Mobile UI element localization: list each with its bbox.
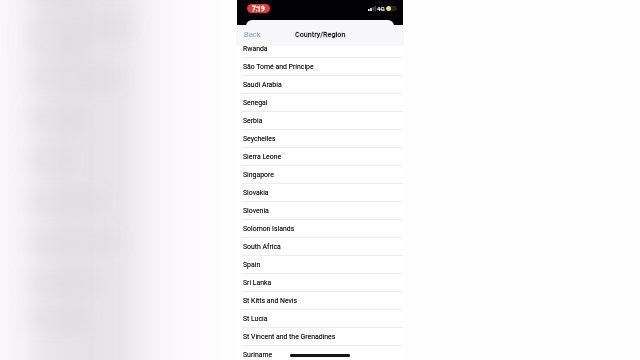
staticText: Rwanda xyxy=(243,45,268,53)
staticText: South Africa xyxy=(243,243,281,251)
staticText: Serbia xyxy=(24,149,72,169)
staticText: Solomon Islands xyxy=(243,225,295,233)
staticText: 7:19 xyxy=(252,5,265,13)
button[interactable]: Singapore xyxy=(236,166,404,184)
staticText: Back xyxy=(244,30,261,39)
staticText: Slovakia xyxy=(243,189,269,197)
button[interactable]: Seychelles xyxy=(236,130,404,148)
button[interactable]: Rwanda xyxy=(236,40,404,58)
staticText: Sierra Leone xyxy=(243,153,282,161)
button[interactable]: Slovenia xyxy=(236,202,404,220)
staticText: Seychelles xyxy=(243,135,276,143)
button[interactable]: Back xyxy=(240,26,265,43)
staticText: 4G xyxy=(377,5,385,12)
staticText: St Lucia xyxy=(243,315,268,323)
staticText: Senegal xyxy=(243,99,268,107)
button[interactable]: St Kitts and Nevis xyxy=(236,292,404,310)
staticText: Serbia xyxy=(243,117,263,125)
staticText: St Lucia xyxy=(243,315,268,323)
staticText: Slovakia xyxy=(24,308,88,328)
staticText: Serbia xyxy=(243,117,263,125)
button[interactable]: Sri Lanka xyxy=(236,274,404,292)
button[interactable]: São Tomé and Príncipe xyxy=(236,58,404,76)
staticText: Sri Lanka xyxy=(243,279,272,287)
staticText: Sierra Leone xyxy=(243,153,282,161)
staticText: Singapore xyxy=(243,171,274,179)
button[interactable]: Serbia xyxy=(236,112,404,130)
staticText: Senegal xyxy=(243,99,268,107)
staticText: São Tomé and Príncipe xyxy=(24,16,190,56)
button[interactable]: Solomon Islands xyxy=(236,220,404,238)
button[interactable]: Sierra Leone xyxy=(236,148,404,166)
staticText: St Vincent and the Grenadines xyxy=(243,333,336,341)
staticText: Seychelles xyxy=(24,190,105,210)
staticText: Slovenia xyxy=(243,207,269,215)
staticText: Slovenia xyxy=(243,207,269,215)
staticText: Saudi Arabia xyxy=(243,81,282,89)
staticText: St Vincent and the Grenadines xyxy=(243,333,336,341)
staticText: Rwanda xyxy=(24,0,85,5)
staticText: Spain xyxy=(243,261,261,269)
button[interactable]: Spain xyxy=(236,256,404,274)
staticText: South Africa xyxy=(243,243,281,251)
staticText: Singapore xyxy=(24,272,101,292)
button[interactable]: Slovakia xyxy=(236,184,404,202)
button[interactable]: South Africa xyxy=(236,238,404,256)
staticText: Saudi Arabia xyxy=(24,67,120,87)
staticText: São Tomé and Príncipe xyxy=(243,63,314,71)
staticText: Solomon Islands xyxy=(243,225,295,233)
staticText: Rwanda xyxy=(243,45,268,53)
button[interactable]: Senegal xyxy=(236,94,404,112)
staticText: Senegal xyxy=(24,108,85,128)
staticText: Suriname xyxy=(243,351,273,359)
button[interactable]: Suriname xyxy=(236,346,404,360)
button[interactable]: St Vincent and the Grenadines xyxy=(236,328,404,346)
button[interactable]: Saudi Arabia xyxy=(236,76,404,94)
staticText: Sri Lanka xyxy=(243,279,272,287)
staticText: St Kitts and Nevis xyxy=(243,297,298,305)
staticText: Spain xyxy=(243,261,261,269)
staticText: Suriname xyxy=(243,351,273,359)
staticText: Singapore xyxy=(243,171,274,179)
staticText: Seychelles xyxy=(243,135,276,143)
staticText: Saudi Arabia xyxy=(243,81,282,89)
staticText: Country/Region xyxy=(295,30,346,38)
staticText: Slovakia xyxy=(243,189,269,197)
staticText: Sierra Leone xyxy=(24,231,119,251)
staticText: St Kitts and Nevis xyxy=(243,297,298,305)
staticText: São Tomé and Príncipe xyxy=(243,63,314,71)
button[interactable]: St Lucia xyxy=(236,310,404,328)
